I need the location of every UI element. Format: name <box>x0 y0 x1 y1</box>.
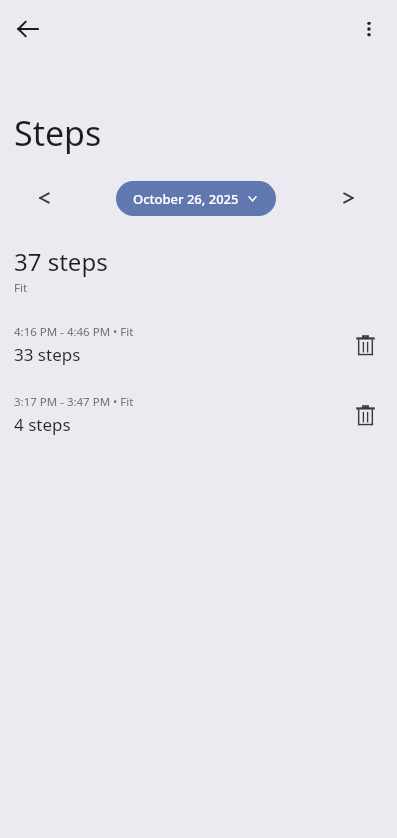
staticText: 3:17 PM - 3:47 PM • Fit <box>14 394 134 410</box>
staticText: Steps <box>14 110 102 156</box>
button[interactable]: October 26, 2025 <box>116 181 276 216</box>
button[interactable]: 4:16 PM - 4:46 PM • Fit <box>0 322 397 368</box>
button[interactable]: Delete entry <box>345 395 385 435</box>
staticText: 37 steps <box>14 245 108 278</box>
button[interactable]: 3:17 PM - 3:47 PM • Fit <box>0 392 397 438</box>
staticText: Fit <box>14 280 28 296</box>
staticText: 33 steps <box>14 343 81 366</box>
staticText: 4 steps <box>14 413 71 436</box>
button[interactable]: Next day <box>327 178 369 218</box>
staticText: 4:16 PM - 4:46 PM • Fit <box>14 324 134 340</box>
staticText: October 26, 2025 <box>133 190 239 208</box>
button[interactable]: Back <box>6 7 50 51</box>
button[interactable]: Previous day <box>23 178 65 218</box>
button[interactable]: Delete entry <box>345 325 385 365</box>
button[interactable]: More options <box>347 7 391 51</box>
